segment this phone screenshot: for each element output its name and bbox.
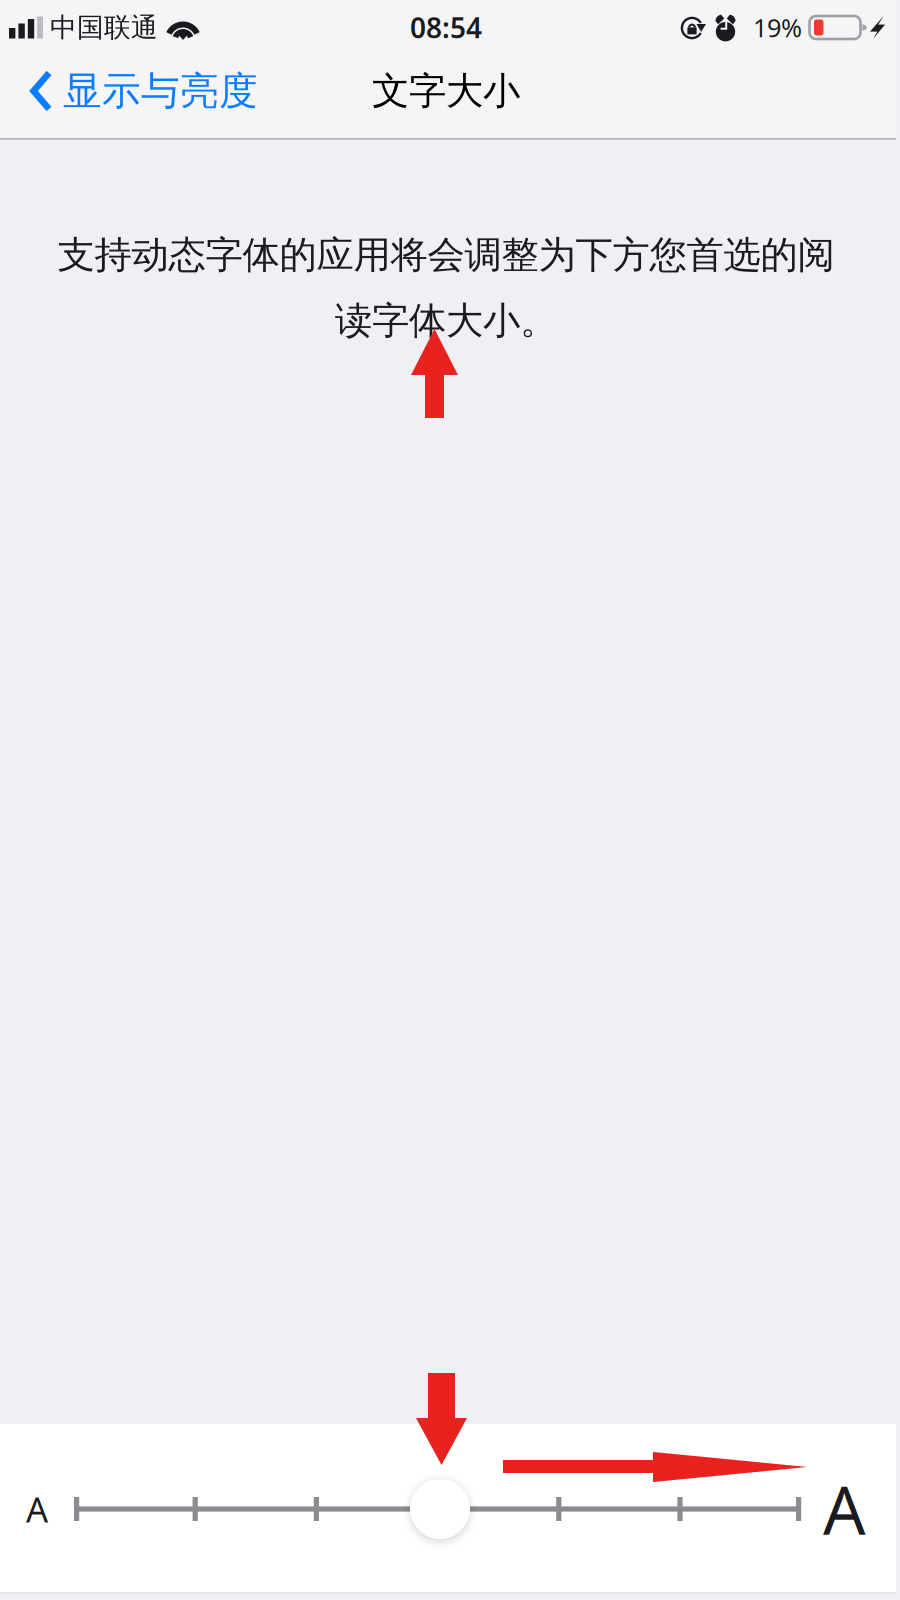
- button[interactable]: 显示与亮度: [0, 55, 280, 127]
- staticText: A: [823, 1465, 866, 1553]
- staticText: 中国联通: [50, 11, 158, 44]
- staticText: A: [26, 1486, 48, 1532]
- staticText: 08:54: [410, 9, 482, 46]
- staticText: 文字大小: [372, 68, 520, 114]
- staticText: 支持动态字体的应用将会调整为下方您首选的阅: [57, 232, 834, 278]
- staticText: 读字体大小。: [335, 298, 557, 344]
- staticText: 19%: [753, 11, 802, 44]
- staticText: 显示与亮度: [63, 67, 258, 115]
